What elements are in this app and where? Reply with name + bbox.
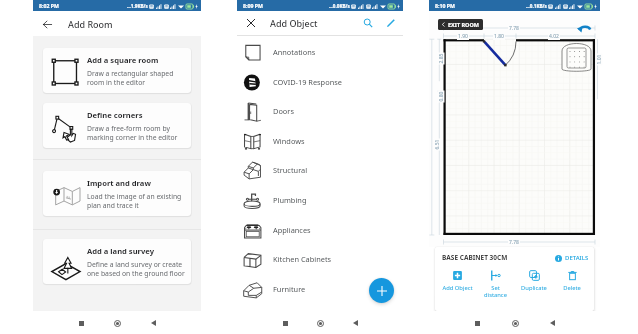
staticText: Draw a rectangular shaped room in the ed… [87,69,174,87]
button[interactable]: Edit [383,15,399,31]
button[interactable]: Back [38,15,56,33]
button[interactable]: Close [242,14,260,32]
button[interactable]: COVID-19 Response [237,71,403,93]
staticText: Set distance [484,284,507,299]
button[interactable]: DETAILS [555,254,589,262]
button[interactable]: Define corners [43,103,191,148]
staticText: 1.80 [494,33,504,40]
staticText: 8:02 PM [39,2,59,9]
staticText: Kitchen Cabinets [273,254,332,264]
button[interactable]: Add a land survey [43,239,191,284]
button[interactable]: Windows [237,130,403,152]
button[interactable]: Plumbing [237,189,403,211]
button[interactable]: Doors [237,100,403,122]
button[interactable]: Add Object [439,270,475,292]
staticText: 7.78 [509,239,519,246]
button[interactable]: Structural [237,159,403,181]
staticText: Define corners [87,110,143,120]
staticText: Annotations [273,47,316,57]
staticText: Add a square room [87,55,159,65]
button[interactable]: Duplicate [516,270,552,292]
button[interactable]: Undo [575,19,593,37]
staticText: ...0.0KB/s [329,3,350,9]
staticText: Delete [563,284,581,292]
button[interactable]: Annotations [237,41,403,63]
staticText: ...1.9KB/s [127,3,148,9]
staticText: Doors [273,106,294,116]
staticText: EXIT ROOM [448,21,480,28]
staticText: Duplicate [521,284,547,292]
staticText: Define a land survey or create one based… [87,260,185,278]
staticText: BASE CABINET 30CM [442,253,508,262]
staticText: Add Object [270,17,318,29]
button[interactable]: Search [360,15,376,31]
staticText: Add Room [68,18,113,30]
staticText: Furniture [273,284,306,294]
staticText: Draw a free-form room by marking corner … [87,124,178,142]
button[interactable]: Home [508,316,522,330]
staticText: COVID-19 Response [273,77,342,87]
staticText: Appliances [273,225,311,235]
staticText: Add Object [442,284,473,292]
button[interactable]: Back [146,316,160,330]
button[interactable]: Import and draw [43,171,191,216]
staticText: 1.90 [458,33,468,40]
staticText: 0.80 [437,91,444,101]
staticText: Add a land survey [87,246,155,256]
button[interactable]: Set distance [477,270,513,299]
button[interactable]: Home [313,316,327,330]
staticText: 2.85 [437,53,444,63]
staticText: Plumbing [273,195,307,205]
staticText: 8:10 PM [435,2,455,9]
button[interactable]: Back [545,316,559,330]
button[interactable]: Back [348,316,362,330]
button[interactable]: EXIT ROOM [438,19,483,30]
button[interactable]: Kitchen Cabinets [237,248,403,270]
staticText: Import and draw [87,178,151,188]
staticText: 8:09 PM [243,2,263,9]
button[interactable]: Furniture [237,278,403,300]
staticText: 1.01 [595,54,602,64]
staticText: Structural [273,165,308,175]
button[interactable]: Recents [470,316,484,330]
staticText: 4.02 [549,33,559,40]
button[interactable]: Delete [554,270,590,292]
button[interactable]: Add object [369,278,394,303]
button[interactable]: Appliances [237,219,403,241]
button[interactable]: Recents [74,316,88,330]
staticText: DETAILS [565,254,589,262]
staticText: Load the image of an existing plan and t… [87,192,182,210]
staticText: 7.78 [509,25,519,32]
button[interactable]: Recents [278,316,292,330]
staticText: ...0.1KB/s [526,3,547,9]
button[interactable]: Add a square room [43,48,191,93]
staticText: Windows [273,136,305,146]
button[interactable]: Home [110,316,124,330]
staticText: 6.51 [433,139,440,149]
